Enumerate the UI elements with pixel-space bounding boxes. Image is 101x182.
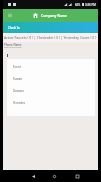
staticText: Hirandra bbox=[13, 101, 25, 105]
button[interactable]: Recent apps bbox=[70, 170, 84, 182]
staticText: Kuwait bbox=[13, 77, 23, 81]
staticText: Escort bbox=[13, 65, 22, 69]
button[interactable]: Open navigation menu bbox=[5, 11, 14, 20]
button[interactable]: Check In bbox=[3, 22, 98, 33]
button[interactable]: Hirandra bbox=[7, 97, 95, 109]
button[interactable]: Kuwait bbox=[7, 73, 95, 85]
button[interactable]: Daewoo bbox=[7, 85, 95, 97]
button[interactable]: Escort bbox=[7, 61, 95, 73]
staticText: 84% bbox=[75, 3, 81, 7]
button[interactable]: Home bbox=[47, 170, 61, 182]
button[interactable]: Back bbox=[26, 170, 40, 182]
staticText: Active Faucets ( 0 ) | Checkedin ( 0 ) |… bbox=[4, 35, 97, 40]
staticText: Check In bbox=[8, 26, 20, 30]
staticText: Phone Name bbox=[4, 43, 22, 47]
staticText: Company Name bbox=[41, 13, 68, 18]
staticText: Enter phone name bbox=[4, 46, 22, 49]
staticText: 3:36 PM bbox=[85, 3, 96, 7]
staticText: Daewoo bbox=[13, 89, 25, 93]
